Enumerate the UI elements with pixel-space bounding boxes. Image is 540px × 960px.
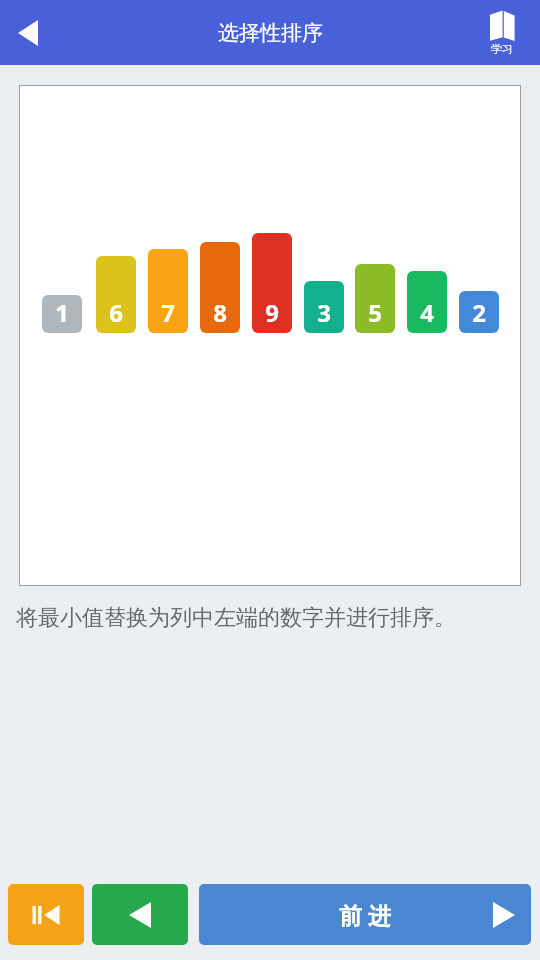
staticText: 7 [161, 296, 175, 329]
staticText: 9 [265, 296, 279, 329]
staticText: 3 [317, 296, 331, 329]
staticText: 学习 [491, 42, 513, 56]
staticText: 8 [213, 296, 227, 329]
button[interactable]: Reset [8, 884, 84, 945]
staticText: 前 进 [339, 899, 391, 930]
staticText: 选择性排序 [218, 20, 323, 46]
button[interactable]: 前 进 [199, 884, 531, 945]
staticText: 1 [55, 296, 69, 329]
staticText: 2 [472, 296, 486, 329]
button[interactable]: 学习 [476, 0, 528, 65]
staticText: 将最小值替换为列中左端的数字并进行排序。 [16, 604, 456, 632]
staticText: 4 [420, 296, 434, 329]
button[interactable]: Previous step [92, 884, 188, 945]
staticText: 6 [109, 296, 123, 329]
staticText: 5 [368, 296, 382, 329]
button[interactable]: Back [0, 0, 56, 65]
